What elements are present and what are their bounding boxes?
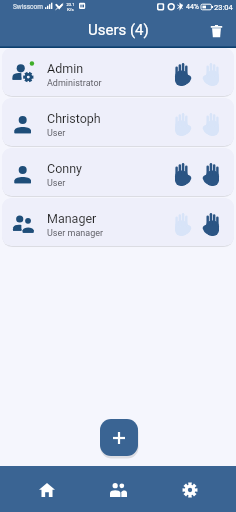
- staticText: 44%: [186, 3, 199, 11]
- button[interactable]: Christoph: [2, 98, 234, 146]
- button[interactable]: Grant right-hand permission: [170, 100, 197, 146]
- button[interactable]: Users: [94, 466, 142, 512]
- button[interactable]: Delete: [203, 18, 229, 44]
- button[interactable]: Grant right-hand permission: [170, 50, 197, 96]
- staticText: User manager: [47, 228, 104, 239]
- staticText: 23:04: [214, 3, 233, 12]
- button[interactable]: Manager: [2, 198, 234, 246]
- button[interactable]: Grant left-hand permission: [197, 150, 224, 196]
- staticText: User: [47, 178, 66, 189]
- button[interactable]: Grant left-hand permission: [197, 50, 224, 96]
- button[interactable]: Add user: [100, 419, 138, 456]
- button[interactable]: Admin: [2, 48, 234, 96]
- button[interactable]: Grant left-hand permission: [197, 200, 224, 246]
- staticText: Administrator: [47, 78, 102, 89]
- staticText: Christoph: [47, 111, 101, 126]
- staticText: User: [47, 128, 66, 139]
- staticText: 23.1 K/s: [66, 2, 75, 12]
- staticText: Swisscom: [13, 3, 43, 11]
- button[interactable]: Grant right-hand permission: [170, 200, 197, 246]
- staticText: Manager: [47, 211, 97, 226]
- staticText: Users (4): [88, 21, 149, 39]
- button[interactable]: Settings: [166, 466, 214, 512]
- staticText: Conny: [47, 161, 82, 176]
- staticText: Admin: [47, 61, 84, 76]
- button[interactable]: Home: [23, 466, 71, 512]
- button[interactable]: Grant right-hand permission: [170, 150, 197, 196]
- button[interactable]: Grant left-hand permission: [197, 100, 224, 146]
- button[interactable]: Conny: [2, 148, 234, 196]
